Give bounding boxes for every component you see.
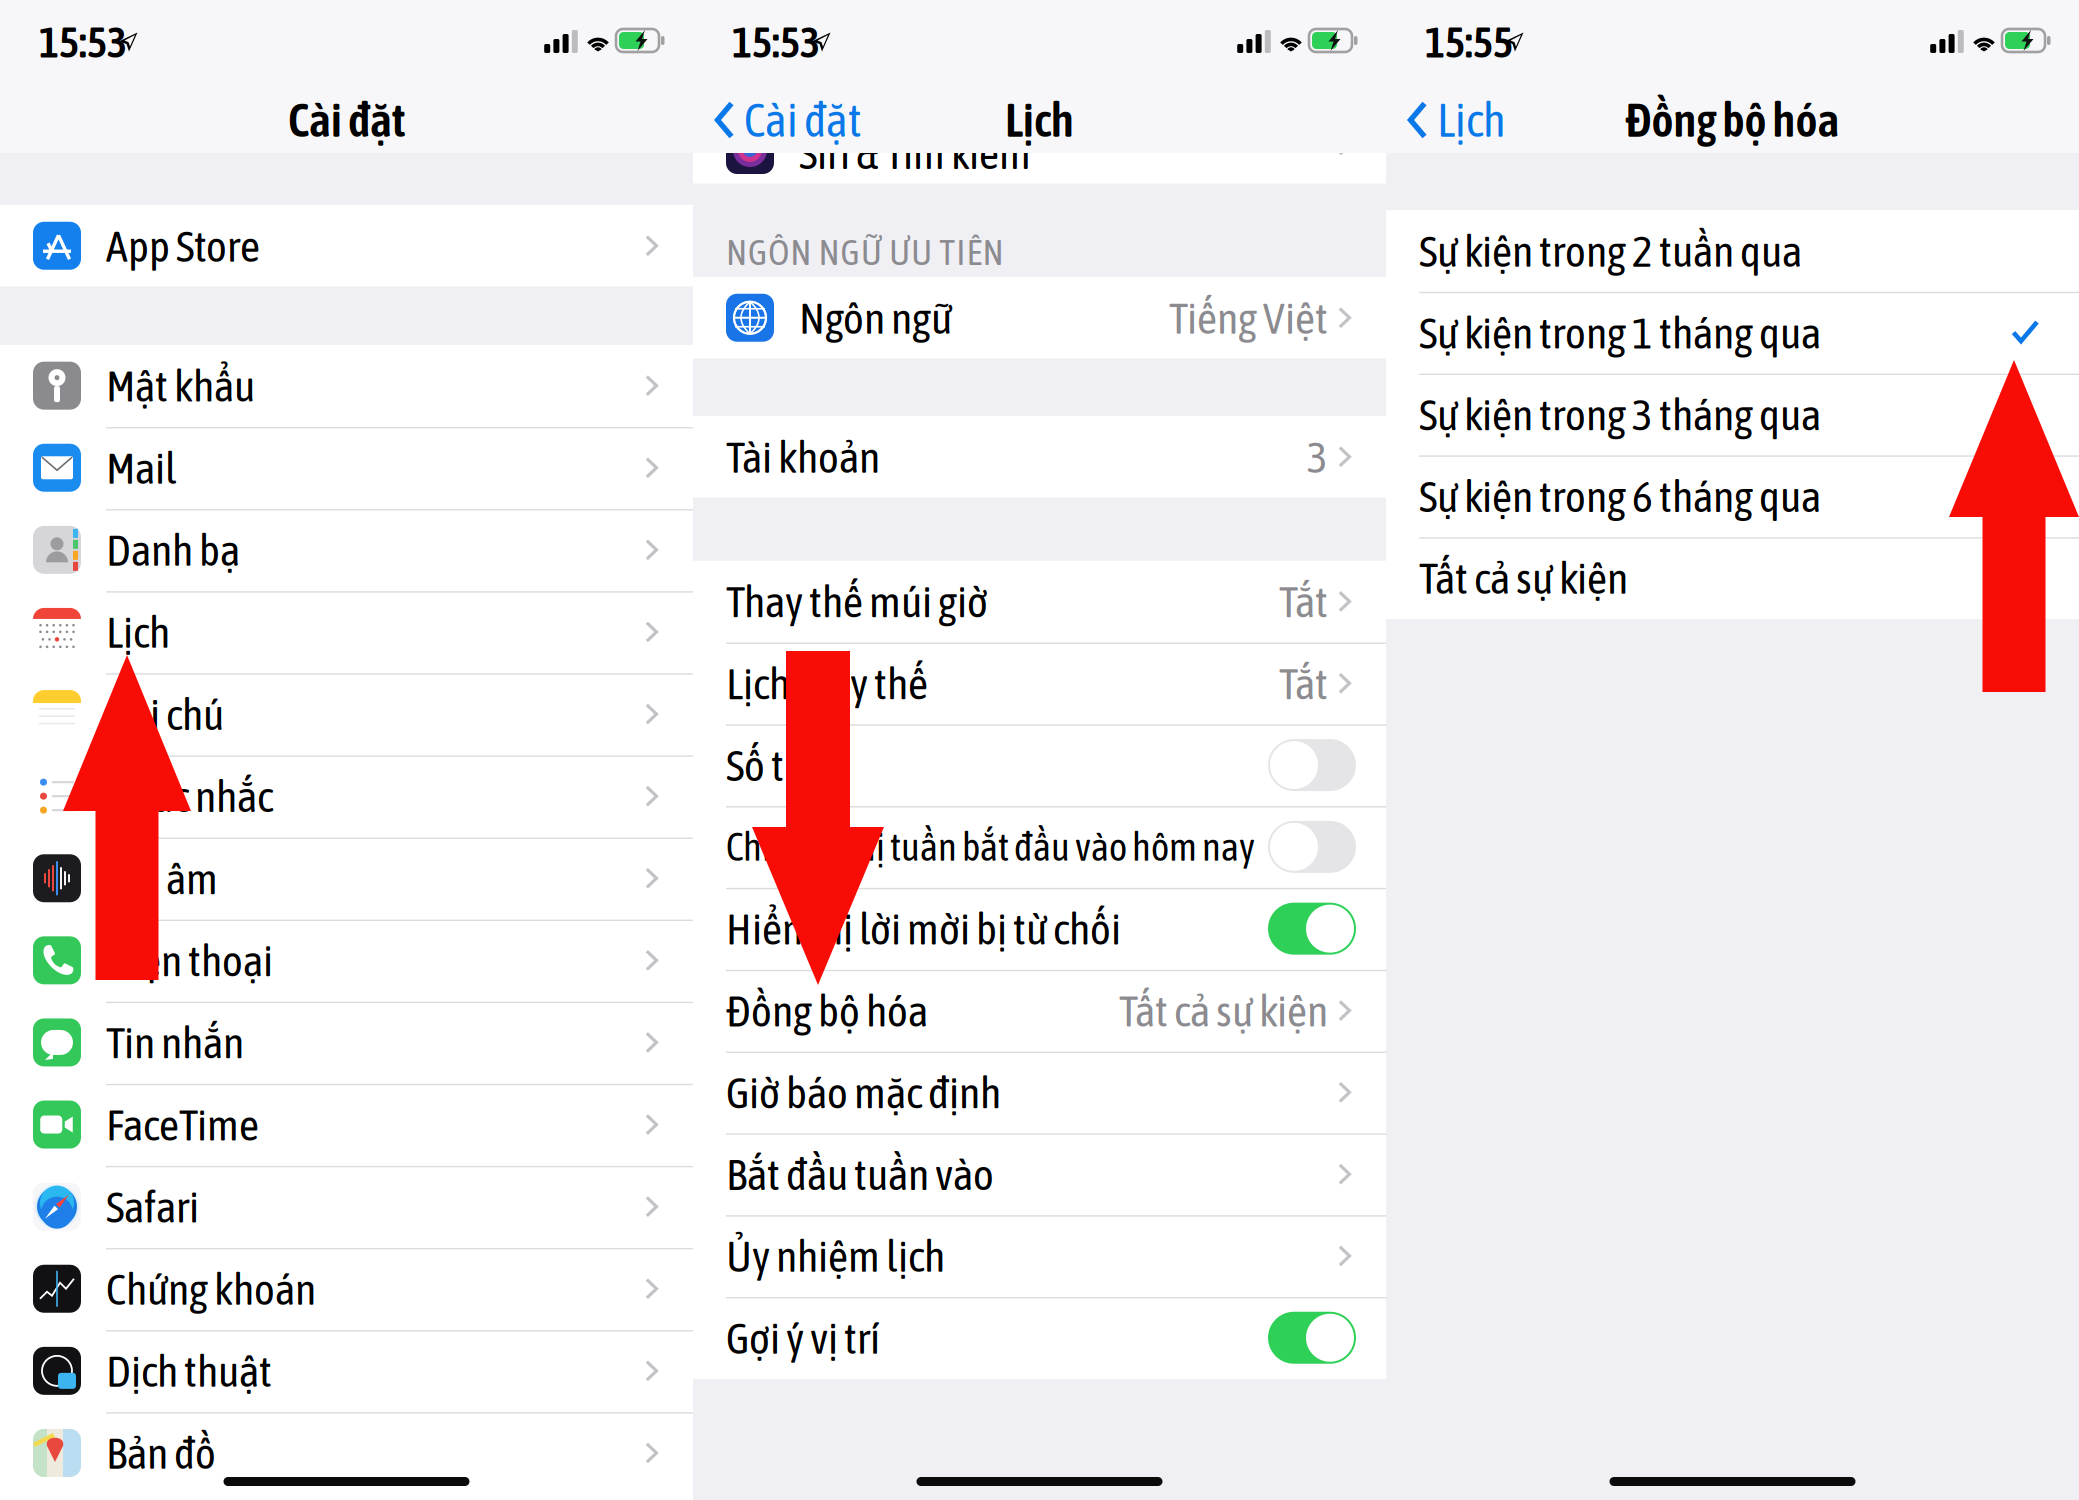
staticText: Sự kiện trong 3 tháng qua xyxy=(1419,389,1821,439)
button[interactable]: Dịch thuật xyxy=(0,1330,693,1412)
staticText: Điện thoại xyxy=(106,935,273,985)
button[interactable]: Gợi ý vị trí xyxy=(693,1297,1386,1378)
button[interactable]: Ghi âm xyxy=(0,837,693,919)
staticText: Bắt đầu tuần vào xyxy=(726,1149,994,1199)
staticText: Ghi chú xyxy=(106,689,224,739)
staticText: Nhắc nhắc xyxy=(106,771,273,821)
staticText: Tiếng Việt xyxy=(1169,292,1328,343)
button[interactable]: Ủy nhiệm lịch xyxy=(693,1215,1386,1297)
staticText: Danh bạ xyxy=(106,525,240,575)
staticText: Tắt xyxy=(1279,658,1328,708)
staticText: Thay thế múi giờ xyxy=(726,576,988,627)
staticText: Sự kiện trong 6 tháng qua xyxy=(1419,471,1821,521)
button[interactable]: Cài đặt xyxy=(693,87,993,153)
staticText: Tất cả sự kiện xyxy=(1119,985,1328,1036)
staticText: Hiển thị lời mời bị từ chối xyxy=(726,903,1121,954)
button[interactable]: Bắt đầu tuần vào xyxy=(693,1133,1386,1215)
button[interactable]: FaceTime xyxy=(0,1084,693,1165)
button[interactable]: Hiển thị lời mời bị từ chối xyxy=(693,888,1386,969)
staticText: Tắt xyxy=(1279,576,1328,627)
button[interactable]: Đồng bộ hóa xyxy=(693,970,1386,1051)
staticText: Mail xyxy=(106,442,177,493)
button[interactable]: App Store xyxy=(0,205,693,286)
staticText: Lịch xyxy=(1005,93,1074,147)
staticText: Chứng khoán xyxy=(106,1263,316,1314)
staticText: Tất cả sự kiện xyxy=(1419,553,1628,603)
staticText: 15:53 xyxy=(39,18,127,66)
button[interactable]: Sự kiện trong 2 tuần qua xyxy=(1386,210,2079,291)
button[interactable]: Chứng khoán xyxy=(0,1248,693,1329)
button[interactable]: Ngôn ngữ xyxy=(693,277,1386,358)
staticText: Safari xyxy=(106,1181,199,1232)
staticText: 15:55 xyxy=(1425,18,1513,66)
button[interactable]: Lịch xyxy=(1386,87,1686,153)
staticText: App Store xyxy=(106,220,260,271)
button[interactable]: Safari xyxy=(0,1166,693,1247)
button[interactable]: Điện thoại xyxy=(0,920,693,1001)
button[interactable]: Tin nhắn xyxy=(0,1002,693,1083)
staticText: Gợi ý vị trí xyxy=(726,1312,880,1363)
staticText: Chỉ hiển thị tuần bắt đầu vào hôm nay xyxy=(726,825,1255,869)
staticText: Số tuần xyxy=(726,740,846,790)
staticText: Tin nhắn xyxy=(106,1017,244,1068)
staticText: NGÔN NGỮ ƯU TIÊN xyxy=(726,231,1003,273)
button[interactable]: Lịch thay thế xyxy=(693,642,1386,724)
button[interactable]: Tài khoản xyxy=(693,416,1386,497)
staticText: Cài đặt xyxy=(288,93,405,147)
button[interactable]: Lịch xyxy=(0,591,693,673)
staticText: 15:53 xyxy=(732,18,820,66)
button[interactable]: Mail xyxy=(0,427,693,508)
button[interactable]: Sự kiện trong 1 tháng qua xyxy=(1386,292,2079,373)
staticText: Sự kiện trong 2 tuần qua xyxy=(1419,225,1802,276)
staticText: Siri & Tìm kiếm xyxy=(799,128,1031,178)
button[interactable]: Nhắc nhắc xyxy=(0,755,693,837)
staticText: Tài khoản xyxy=(726,431,880,482)
button[interactable]: Danh bạ xyxy=(0,509,693,591)
staticText: Lịch thay thế xyxy=(726,658,928,708)
button[interactable]: Mật khẩu xyxy=(0,345,693,426)
button[interactable]: Thay thế múi giờ xyxy=(693,561,1386,642)
staticText: Lịch xyxy=(106,607,170,657)
staticText: Lịch xyxy=(1437,93,1506,147)
button[interactable]: Tất cả sự kiện xyxy=(1386,537,2079,619)
staticText: Ghi âm xyxy=(106,853,218,903)
button[interactable]: Số tuần xyxy=(693,724,1386,806)
staticText: Ngôn ngữ xyxy=(799,292,952,343)
staticText: Bản đồ xyxy=(106,1428,216,1478)
staticText: Sự kiện trong 1 tháng qua xyxy=(1419,307,1821,358)
staticText: Ủy nhiệm lịch xyxy=(726,1231,945,1281)
button[interactable]: Chỉ hiển thị tuần bắt đầu vào hôm nay xyxy=(693,806,1386,888)
button[interactable]: Giờ báo mặc định xyxy=(693,1052,1386,1133)
staticText: Cài đặt xyxy=(744,93,861,147)
staticText: Đồng bộ hóa xyxy=(726,985,928,1036)
button[interactable]: Bản đồ xyxy=(0,1412,693,1494)
button[interactable]: Sự kiện trong 6 tháng qua xyxy=(1386,455,2079,537)
button[interactable]: Ghi chú xyxy=(0,673,693,755)
staticText: Đồng bộ hóa xyxy=(1625,93,1839,147)
button[interactable]: Sự kiện trong 3 tháng qua xyxy=(1386,374,2079,455)
staticText: FaceTime xyxy=(106,1099,259,1150)
staticText: Dịch thuật xyxy=(106,1346,272,1396)
staticText: 3 xyxy=(1307,431,1328,482)
staticText: Giờ báo mặc định xyxy=(726,1067,1001,1117)
staticText: Mật khẩu xyxy=(106,360,255,411)
